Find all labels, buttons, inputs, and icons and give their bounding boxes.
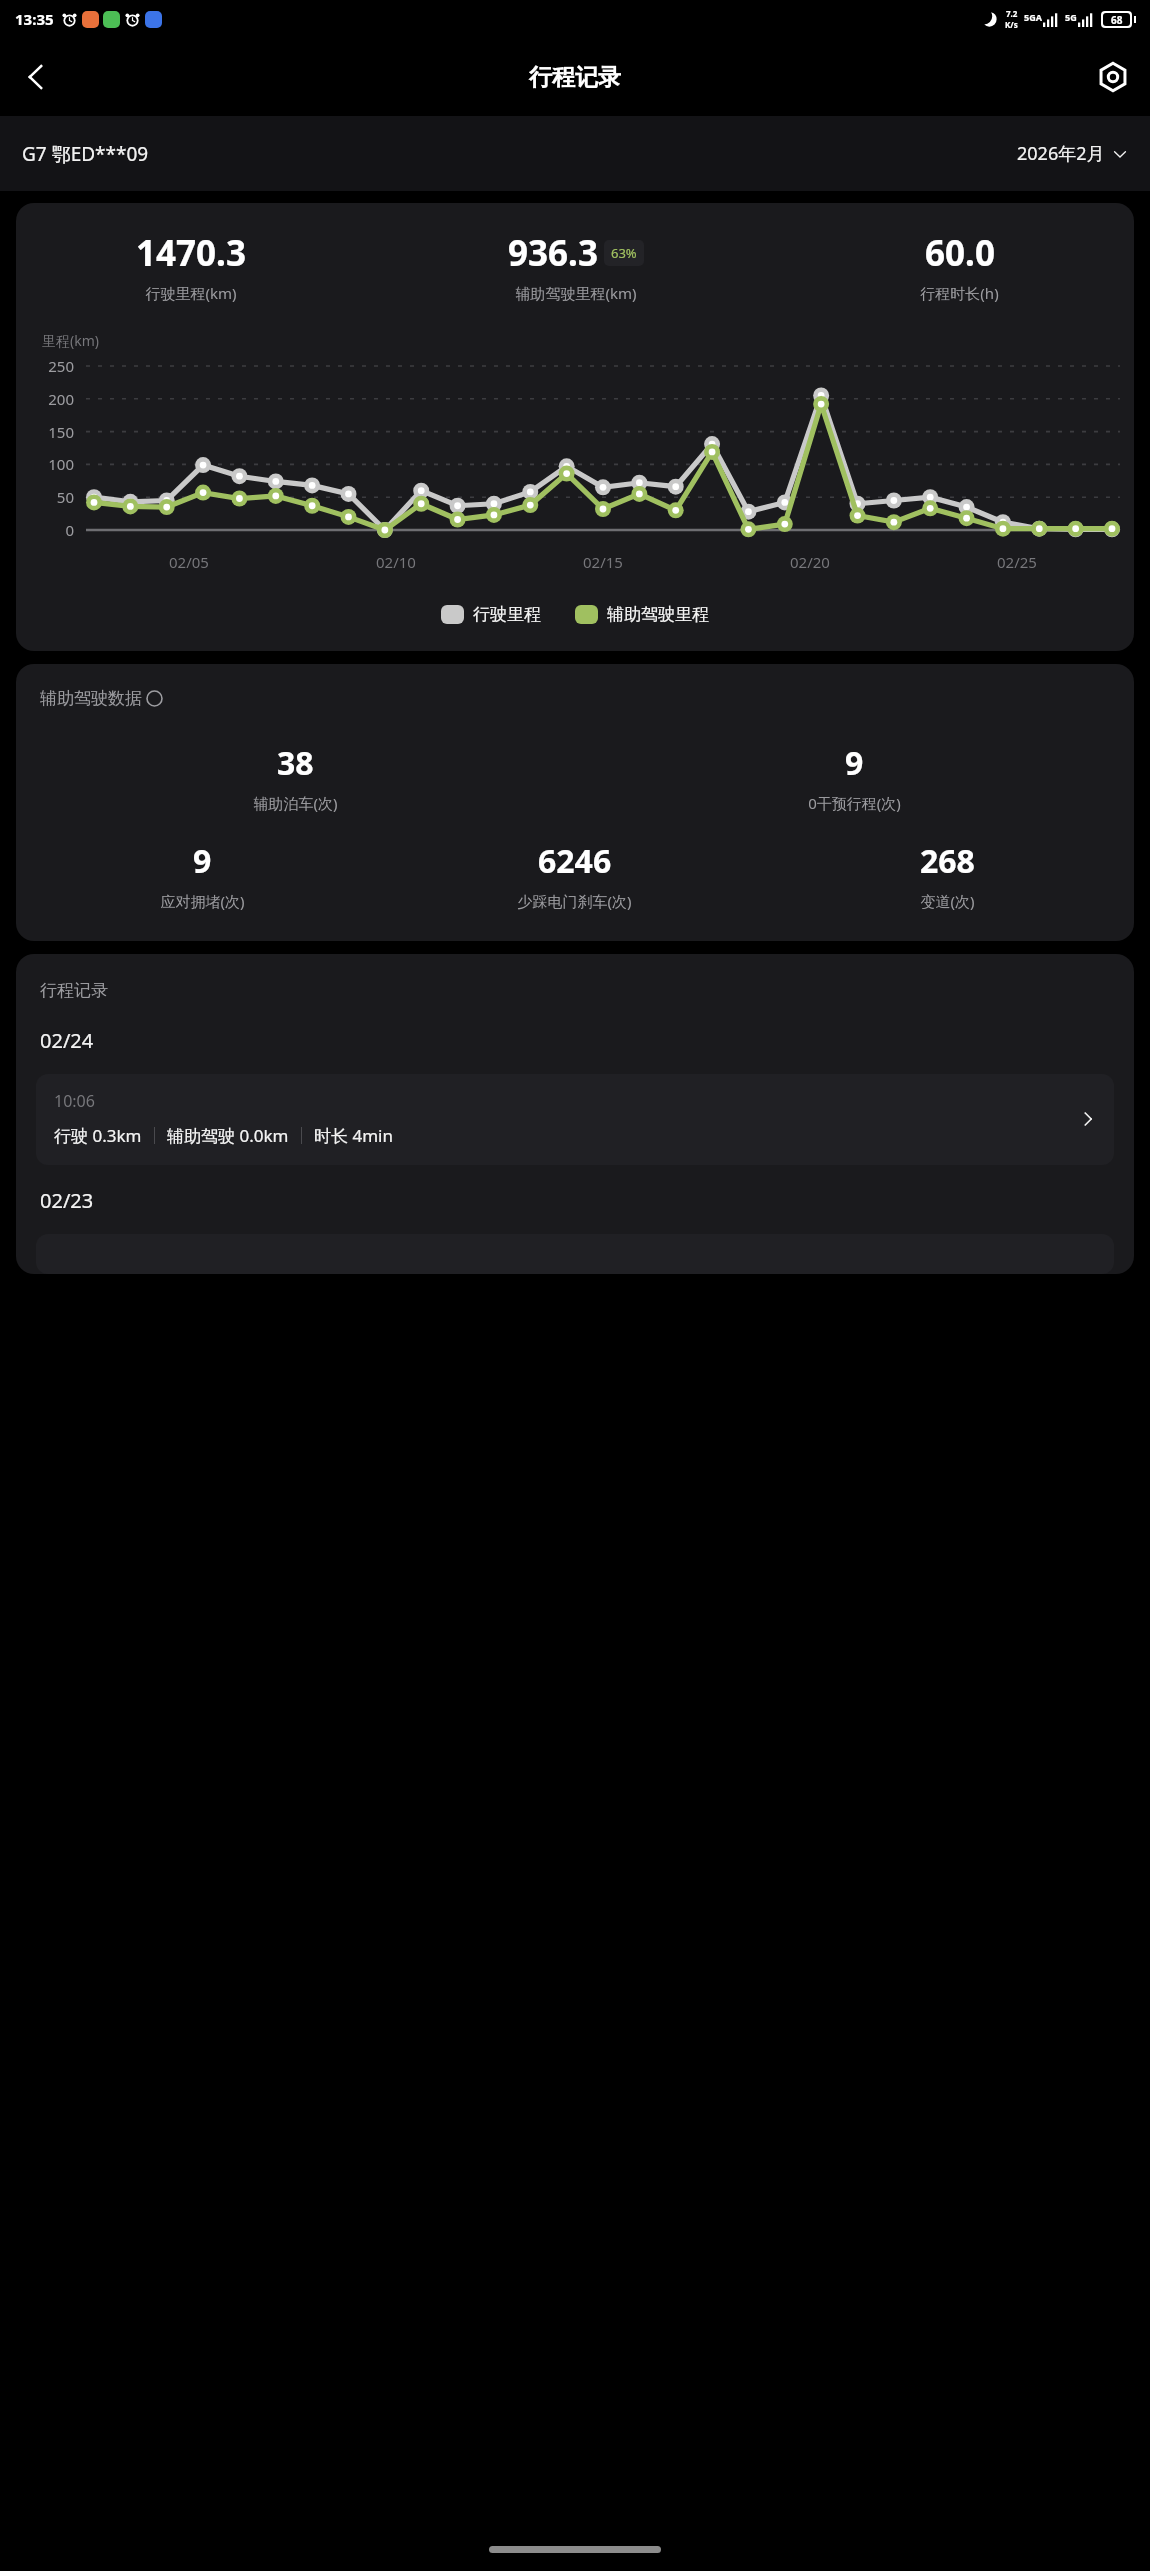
staticText: 02/24 xyxy=(40,1027,94,1054)
staticText: 5G xyxy=(1065,11,1077,23)
staticText: 辅助驾驶里程(km) xyxy=(515,283,637,303)
staticText: 时长 4min xyxy=(314,1124,393,1147)
staticText: 02/20 xyxy=(790,552,830,572)
staticText: 行驶里程(km) xyxy=(145,283,237,303)
staticText: 1470.3 xyxy=(136,229,246,277)
staticText: 0干预行程(次) xyxy=(808,793,901,813)
staticText: 250 xyxy=(16,356,74,376)
staticText: 应对拥堵(次) xyxy=(160,891,245,911)
staticText: 268 xyxy=(920,839,975,883)
staticText: 少踩电门刹车(次) xyxy=(517,891,632,911)
staticText: 6246 xyxy=(538,839,612,883)
button[interactable]: 1470.3 xyxy=(16,203,1134,651)
staticText: 辅助驾驶数据 xyxy=(40,688,142,709)
staticText: 9 xyxy=(193,839,212,883)
staticText: 68 xyxy=(1111,13,1123,26)
staticText: 行程时长(h) xyxy=(920,283,999,303)
staticText: 02/10 xyxy=(376,552,416,572)
staticText: 变道(次) xyxy=(920,891,975,911)
staticText: 行程记录 xyxy=(529,63,621,92)
staticText: 行驶 0.3km xyxy=(54,1124,142,1147)
button[interactable]: G7 鄂ED***09 xyxy=(22,141,149,167)
staticText: 辅助驾驶 0.0km xyxy=(167,1124,289,1147)
staticText: 里程(km) xyxy=(42,331,99,350)
staticText: 5GA xyxy=(1024,11,1042,23)
staticText: 10:06 xyxy=(54,1090,95,1112)
button[interactable]: 10:06 xyxy=(36,1074,1114,1165)
staticText: 200 xyxy=(16,389,74,409)
staticText: 50 xyxy=(16,487,74,507)
staticText: 60.0 xyxy=(925,229,995,277)
button[interactable]: Back xyxy=(8,49,64,105)
staticText: 02/23 xyxy=(40,1187,94,1214)
button[interactable]: 行驶里程 xyxy=(441,604,541,625)
staticText: 02/15 xyxy=(583,552,623,572)
staticText: 辅助驾驶里程 xyxy=(607,604,709,625)
button[interactable]: 辅助驾驶里程 xyxy=(575,604,709,625)
staticText: 63% xyxy=(611,244,637,262)
staticText: 行程记录 xyxy=(40,980,108,1001)
staticText: 150 xyxy=(16,422,74,442)
staticText: 13:35 xyxy=(15,9,54,29)
staticText: 38 xyxy=(277,741,314,785)
staticText: K/s xyxy=(1005,19,1018,30)
staticText: 行驶里程 xyxy=(473,604,541,625)
staticText: 辅助泊车(次) xyxy=(253,793,338,813)
staticText: 2026年2月 xyxy=(1017,141,1105,166)
staticText: 100 xyxy=(16,454,74,474)
button[interactable]: 辅助驾驶数据 xyxy=(16,664,1134,941)
staticText: 7.2 xyxy=(1006,8,1018,19)
staticText: 02/05 xyxy=(169,552,209,572)
button[interactable]: 2026年2月 xyxy=(1017,141,1128,166)
staticText: 936.3 xyxy=(508,229,598,277)
staticText: 0 xyxy=(16,520,74,540)
staticText: 02/25 xyxy=(997,552,1037,572)
staticText: 9 xyxy=(845,741,864,785)
button[interactable]: Settings xyxy=(1086,50,1140,104)
